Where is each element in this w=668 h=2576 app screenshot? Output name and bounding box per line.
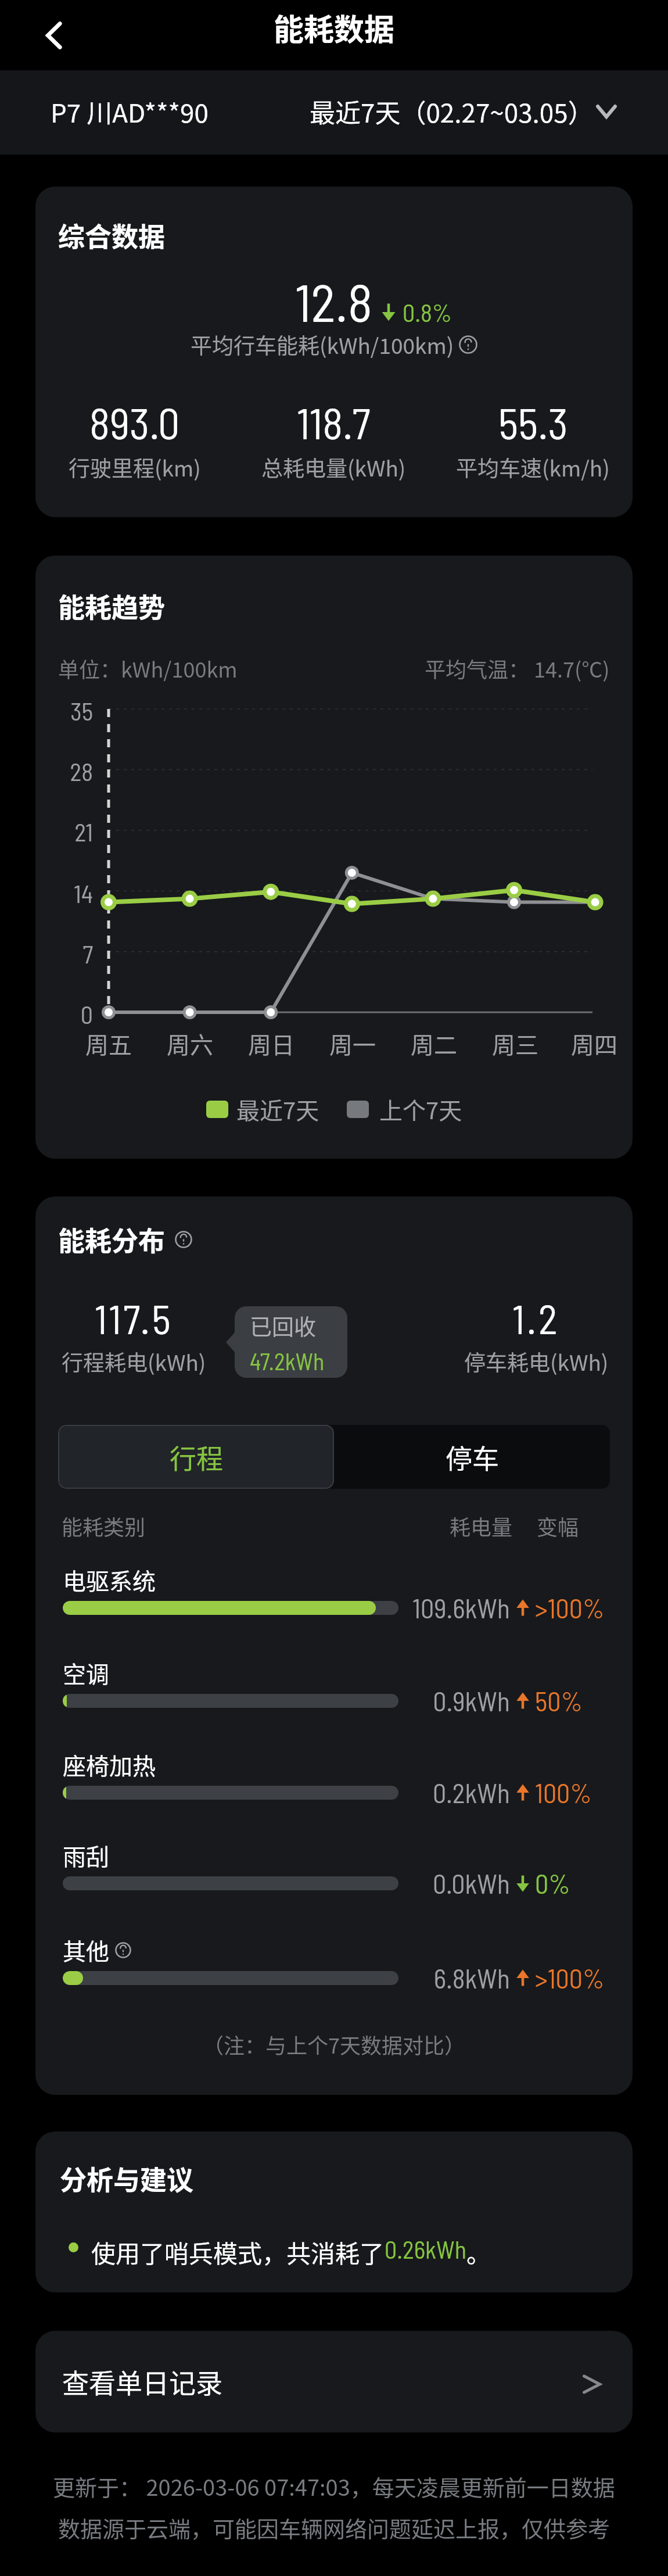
staticText: 100% [535, 1776, 592, 1808]
staticText: 能耗趋势 [58, 586, 165, 625]
staticText: 118.7 [297, 396, 371, 448]
staticText: 周四 [571, 1027, 617, 1061]
staticText: 1.2 [512, 1294, 560, 1342]
staticText: 座椅加热 [63, 1748, 156, 1782]
staticText: 其他 [63, 1933, 109, 1967]
staticText: 0.8% [403, 298, 452, 327]
staticText: 。 [466, 2234, 491, 2270]
staticText: 周六 [167, 1027, 213, 1061]
staticText: 空调 [63, 1656, 109, 1690]
staticText: 12.8 [295, 270, 373, 332]
staticText: 周二 [411, 1027, 457, 1061]
staticText: 平均气温： 14.7(℃) [425, 653, 610, 683]
button[interactable]: 停车 [334, 1425, 610, 1489]
staticText: 0.9kWh [400, 1685, 510, 1717]
button[interactable]: 查看单日记录 [35, 2331, 633, 2432]
staticText: 停车 [446, 1438, 499, 1477]
staticText: 6.8kWh [400, 1962, 510, 1994]
staticText: 0 [35, 999, 93, 1029]
staticText: 变幅 [537, 1511, 579, 1541]
staticText: >100% [535, 1962, 605, 1994]
staticText: 0.2kWh [400, 1776, 510, 1808]
staticText: 0.26kWh [385, 2234, 466, 2263]
staticText: 14 [35, 879, 93, 908]
staticText: 0% [535, 1867, 570, 1899]
staticText: （注：与上个7天数据对比） [35, 2029, 633, 2059]
staticText: 已回收 [250, 1309, 317, 1341]
staticText: 使用了哨兵模式，共消耗了 [91, 2234, 385, 2270]
staticText: 上个7天 [379, 1092, 462, 1126]
staticText: 单位：kWh/100km [58, 653, 238, 683]
staticText: 0.0kWh [400, 1867, 510, 1899]
staticText: 7 [35, 939, 93, 968]
staticText: 117.5 [95, 1294, 173, 1342]
staticText: 行程 [170, 1438, 223, 1477]
staticText: 50% [535, 1685, 583, 1717]
staticText: 周五 [85, 1027, 132, 1061]
staticText: 更新于： 2026-03-06 07:47:03，每天凌晨更新前一日数据 [53, 2470, 615, 2502]
staticText: 停车耗电(kWh) [464, 1346, 609, 1377]
staticText: 耗电量 [450, 1511, 513, 1541]
staticText: 893.0 [89, 396, 180, 448]
staticText: P7 川AD***90 [51, 93, 209, 130]
staticText: 最近7天（02.27~03.05） [310, 93, 594, 130]
staticText: 查看单日记录 [62, 2362, 222, 2401]
button[interactable]: 行程 [58, 1425, 334, 1489]
button[interactable]: Back [28, 9, 80, 62]
staticText: 周一 [329, 1027, 376, 1061]
staticText: 47.2kWh [250, 1347, 325, 1375]
staticText: 数据源于云端，可能因车辆网络问题延迟上报，仅供参考 [58, 2511, 610, 2543]
staticText: 平均行车能耗(kWh/100km) [191, 329, 454, 360]
staticText: 能耗分布 [58, 1220, 165, 1259]
staticText: 能耗数据 [274, 6, 395, 49]
staticText: 雨刮 [63, 1839, 109, 1872]
button[interactable]: 最近7天（02.27~03.05） [310, 93, 617, 130]
staticText: 分析与建议 [60, 2159, 193, 2198]
staticText: 55.3 [498, 396, 568, 448]
staticText: 35 [35, 696, 93, 725]
staticText: 总耗电量(kWh) [261, 452, 406, 483]
staticText: 能耗类别 [62, 1511, 146, 1541]
staticText: 109.6kWh [400, 1592, 510, 1624]
staticText: 周日 [248, 1027, 295, 1061]
staticText: 周三 [492, 1027, 538, 1061]
staticText: 平均车速(km/h) [456, 452, 610, 483]
staticText: 21 [35, 817, 93, 846]
staticText: 综合数据 [58, 216, 165, 255]
staticText: 行程耗电(kWh) [62, 1346, 206, 1377]
staticText: 最近7天 [236, 1092, 319, 1126]
staticText: 电驱系统 [63, 1563, 156, 1597]
staticText: 28 [35, 757, 93, 786]
staticText: >100% [535, 1592, 605, 1624]
staticText: 行驶里程(km) [69, 452, 201, 483]
